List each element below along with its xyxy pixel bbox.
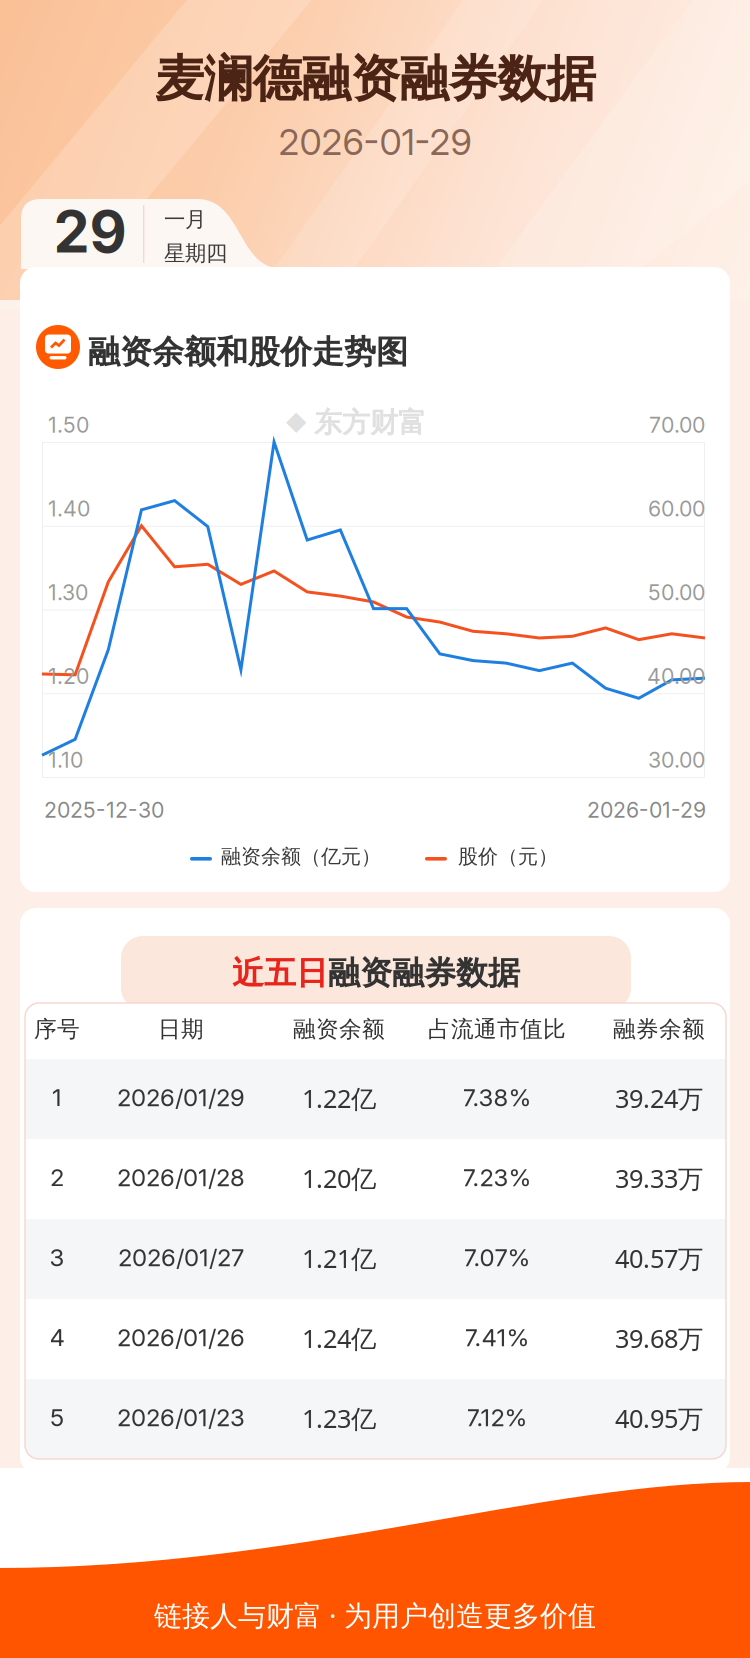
staticText: 融券余额 [613, 1015, 705, 1044]
staticText: 2026/01/26 [117, 1323, 245, 1352]
staticText: 股价（元） [458, 844, 558, 869]
staticText: 1.22亿 [302, 1081, 376, 1115]
staticText: 2 [50, 1163, 64, 1192]
staticText: 50.00 [648, 579, 705, 605]
staticText: 1.21亿 [302, 1241, 376, 1275]
staticText: ◆ [285, 410, 307, 435]
staticText: 1.40 [48, 496, 90, 522]
staticText: 30.00 [648, 747, 705, 773]
staticText: 39.24万 [615, 1081, 703, 1115]
staticText: 融资余额和股价走势图 [88, 332, 408, 372]
staticText: 7.12% [466, 1403, 527, 1432]
staticText: 2026/01/27 [118, 1243, 244, 1272]
staticText: 1 [52, 1083, 62, 1112]
staticText: 融资余额（亿元） [221, 844, 381, 869]
staticText: 3 [49, 1243, 64, 1272]
staticText: 70.00 [649, 412, 705, 438]
staticText: 7.23% [462, 1163, 531, 1192]
staticText: 一月 [164, 206, 206, 233]
staticText: 2025-12-30 [44, 797, 164, 823]
staticText: 5 [50, 1403, 64, 1432]
staticText: 60.00 [648, 496, 705, 522]
staticText: 39.33万 [615, 1161, 703, 1195]
staticText: 39.68万 [615, 1321, 703, 1355]
staticText: 7.07% [463, 1243, 530, 1272]
staticText: 占流通市值比 [428, 1015, 566, 1044]
staticText: 2026-01-29 [587, 797, 706, 823]
staticText: 40.95万 [615, 1401, 703, 1435]
staticText: 40.57万 [615, 1241, 703, 1275]
staticText: 序号 [34, 1015, 80, 1044]
staticText: 2026/01/29 [117, 1083, 245, 1112]
staticText: 7.41% [464, 1323, 529, 1352]
staticText: 7.38% [462, 1083, 531, 1112]
staticText: 1.10 [48, 747, 83, 773]
staticText: 2026/01/23 [117, 1403, 245, 1432]
staticText: 融资融券数据 [328, 953, 520, 993]
staticText: 1.20亿 [302, 1161, 376, 1195]
staticText: 4 [49, 1323, 64, 1352]
staticText: 链接人与财富 · 为用户创造更多价值 [154, 1596, 596, 1634]
staticText: 1.23亿 [302, 1401, 376, 1435]
staticText: 日期 [158, 1015, 204, 1044]
staticText: 近五日 [232, 953, 328, 993]
staticText: 麦澜德融资融券数据 [154, 48, 595, 110]
staticText: 东方财富 [314, 405, 426, 440]
staticText: 1.30 [48, 579, 88, 605]
staticText: 1.50 [48, 412, 89, 438]
staticText: 40.00 [647, 663, 705, 689]
staticText: 2026/01/28 [117, 1163, 245, 1192]
staticText: 融资余额 [293, 1015, 385, 1044]
staticText: 2026-01-29 [278, 120, 471, 164]
staticText: 星期四 [164, 240, 227, 267]
staticText: 29 [53, 197, 126, 266]
staticText: 1.24亿 [302, 1321, 376, 1355]
staticText: 1.20 [48, 663, 89, 689]
